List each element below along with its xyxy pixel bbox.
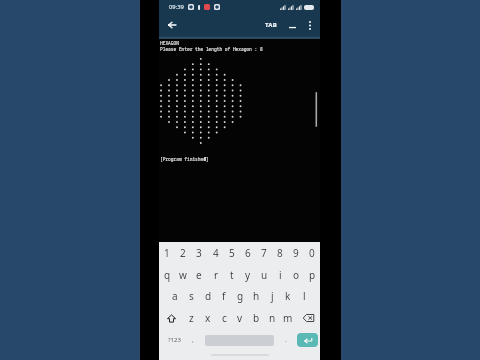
staticText: k [285,289,291,303]
button[interactable]: Back [164,17,180,33]
button[interactable]: 6 [240,242,256,264]
button[interactable]: Backspace [299,307,317,329]
staticText: g [237,289,244,303]
staticText: j [271,289,274,303]
button[interactable]: e [191,264,207,286]
staticText: y [245,268,251,282]
button[interactable]: 9 [288,242,304,264]
staticText: 1 [164,246,170,260]
button[interactable]: t [224,264,240,286]
staticText: p [309,268,316,282]
button[interactable]: 4 [208,242,224,264]
staticText: 2 [180,246,186,260]
button[interactable]: w [175,264,191,286]
staticText: [Program finished] [160,156,209,162]
staticText: m [283,311,293,325]
staticText: d [205,289,212,303]
staticText: e [196,268,202,282]
button[interactable]: More options [303,18,317,32]
button[interactable]: ?123 [166,329,182,351]
staticText: r [214,268,219,282]
button[interactable]: i [272,264,288,286]
button[interactable]: v [232,307,248,329]
staticText: h [253,289,260,303]
staticText: s [189,289,194,303]
button[interactable]: r [208,264,224,286]
staticText: 6 [245,246,251,260]
staticText: . [285,335,287,345]
staticText: b [253,311,260,325]
button[interactable]: 3 [191,242,207,264]
button[interactable]: q [159,264,175,286]
button[interactable]: z [183,307,199,329]
button[interactable]: 5 [224,242,240,264]
staticText: 4 [213,246,219,260]
button[interactable]: 2 [175,242,191,264]
button[interactable]: u [256,264,272,286]
staticText: l [303,289,306,303]
staticText: i [279,268,282,282]
staticText: f [222,289,226,303]
staticText: v [237,311,243,325]
button[interactable]: 7 [256,242,272,264]
staticText: t [230,268,234,282]
staticText: z [189,311,194,325]
button[interactable]: y [240,264,256,286]
button[interactable]: d [200,285,216,307]
button[interactable]: c [216,307,232,329]
button[interactable]: x [200,307,216,329]
staticText: n [269,311,276,325]
button[interactable]: , [185,329,201,351]
staticText: 8 [277,246,283,260]
button[interactable]: 1 [159,242,175,264]
staticText: ?123 [168,336,181,344]
button[interactable]: p [304,264,320,286]
staticText: 09:39 [169,3,184,11]
button[interactable]: g [232,285,248,307]
staticText: , [192,335,194,345]
staticText: c [222,311,227,325]
button[interactable]: n [264,307,280,329]
staticText: 3 [196,246,202,260]
staticText: w [179,268,187,282]
button[interactable]: 0 [304,242,320,264]
button[interactable]: j [264,285,280,307]
button[interactable]: b [248,307,264,329]
staticText: HEXAGON [160,40,179,46]
staticText: a [172,289,178,303]
staticText: 5 [229,246,235,260]
staticText: Please Enter the length of Hexagon : 8 [160,46,263,52]
button[interactable]: Enter [297,333,318,347]
staticText: 9 [293,246,299,260]
button[interactable]: TAB [262,17,280,33]
button[interactable]: Minimize [285,18,299,32]
staticText: 0 [309,246,315,260]
staticText: u [261,268,268,282]
staticText: x [205,311,211,325]
button[interactable]: k [280,285,296,307]
button[interactable]: o [288,264,304,286]
staticText: 7 [261,246,267,260]
button[interactable]: l [296,285,312,307]
button[interactable]: f [216,285,232,307]
button[interactable]: m [280,307,296,329]
staticText: q [164,268,171,282]
button[interactable]: Shift [162,307,180,329]
button[interactable]: h [248,285,264,307]
staticText: o [293,268,300,282]
staticText: TAB [265,21,278,29]
button[interactable]: s [183,285,199,307]
button[interactable]: a [167,285,183,307]
button[interactable]: 8 [272,242,288,264]
